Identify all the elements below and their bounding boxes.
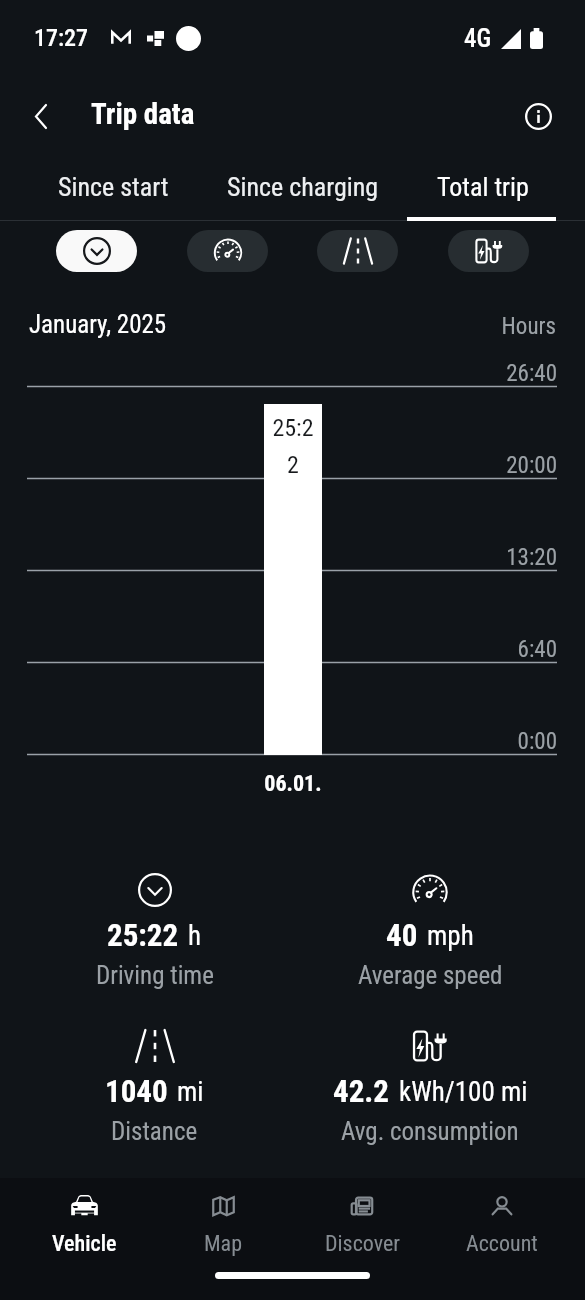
button[interactable]: 1040	[17, 1027, 292, 1146]
staticText: 1040	[105, 1073, 168, 1109]
button[interactable]: 25:22	[17, 871, 292, 990]
staticText: 0:00	[0, 728, 557, 755]
staticText: Map	[204, 1231, 243, 1257]
staticText: 25:22	[107, 917, 179, 953]
staticText: Hours	[0, 313, 556, 340]
staticText: 6:40	[0, 636, 557, 663]
button[interactable]: Back	[23, 98, 59, 134]
button[interactable]: 40	[292, 871, 568, 990]
staticText: mph	[427, 920, 474, 952]
staticText: Account	[466, 1231, 538, 1257]
staticText: Average speed	[358, 961, 503, 990]
button[interactable]: Discover	[293, 1192, 432, 1257]
button[interactable]: Since charging	[198, 152, 408, 221]
button[interactable]: Filter	[187, 230, 268, 272]
button[interactable]: Filter	[317, 230, 398, 272]
button[interactable]: Filter	[448, 230, 529, 272]
staticText: Driving time	[96, 961, 214, 990]
staticText: 26:40	[0, 360, 557, 387]
staticText: 20:00	[0, 452, 557, 479]
staticText: Since charging	[227, 172, 379, 202]
staticText: January, 2025	[29, 310, 167, 339]
button[interactable]: Map	[154, 1192, 293, 1257]
staticText: Total trip	[437, 172, 529, 202]
staticText: Discover	[325, 1231, 400, 1257]
button[interactable]: Info	[525, 103, 552, 130]
button[interactable]: Total trip	[408, 152, 558, 221]
button[interactable]: 42.2	[292, 1027, 568, 1146]
button[interactable]: Since start	[29, 152, 198, 221]
button[interactable]: Filter	[56, 230, 137, 272]
staticText: mi	[177, 1076, 204, 1108]
staticText: Since start	[58, 172, 169, 202]
staticText: 17:27	[34, 24, 89, 52]
staticText: kWh/100 mi	[399, 1076, 528, 1108]
staticText: Distance	[111, 1117, 198, 1146]
staticText: 13:20	[0, 544, 557, 571]
staticText: 4G	[464, 24, 492, 53]
staticText: 42.2	[333, 1073, 390, 1109]
button[interactable]: Account	[432, 1192, 571, 1257]
staticText: Vehicle	[52, 1231, 117, 1257]
staticText: Avg. consumption	[341, 1117, 519, 1146]
button[interactable]: Vehicle	[14, 1192, 154, 1257]
staticText: 06.01.	[213, 771, 373, 797]
staticText: 25:2 2	[264, 414, 322, 478]
staticText: Trip data	[91, 97, 195, 131]
staticText: 40	[386, 917, 418, 953]
staticText: h	[188, 920, 202, 952]
